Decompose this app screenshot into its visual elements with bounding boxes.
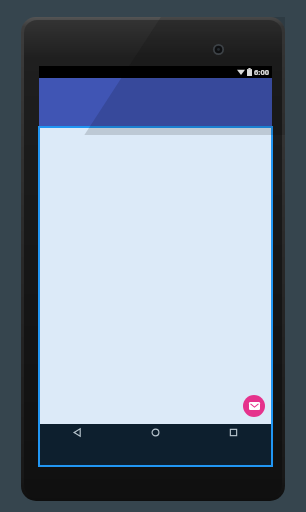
button[interactable]: Compose xyxy=(243,395,265,417)
staticText: 6:00 xyxy=(254,67,269,77)
button[interactable] xyxy=(39,78,272,127)
button[interactable]: Recent apps xyxy=(194,424,272,466)
button[interactable]: Back xyxy=(39,424,116,466)
button[interactable]: Home xyxy=(116,424,194,466)
